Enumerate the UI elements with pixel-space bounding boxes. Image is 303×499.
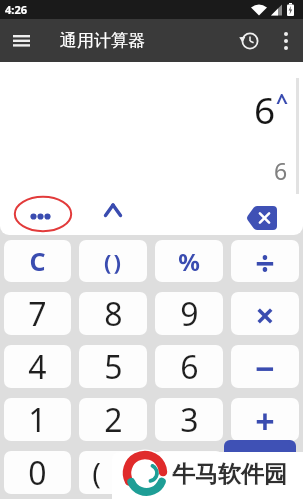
button[interactable]: 8 [79, 292, 147, 335]
staticText: − [255, 345, 275, 388]
button[interactable]: ( [79, 451, 147, 494]
staticText: 牛马软件园 [172, 460, 287, 489]
staticText: 6 [180, 345, 199, 388]
staticText: × [255, 292, 275, 335]
staticText: + [255, 398, 275, 441]
button[interactable]: . [155, 451, 223, 494]
staticText: ( [92, 453, 101, 492]
button[interactable]: + [231, 398, 299, 441]
staticText: 1 [28, 398, 47, 441]
button[interactable] [269, 19, 303, 62]
staticText: 通用计算器 [60, 30, 145, 51]
staticText: () [104, 246, 123, 276]
staticText: 7 [28, 292, 47, 335]
button[interactable] [95, 196, 131, 232]
staticText: 4:26 [5, 2, 27, 17]
staticText: . [185, 451, 194, 494]
button[interactable]: () [79, 240, 147, 282]
button[interactable]: 0 [4, 451, 71, 494]
staticText: 5 [104, 345, 123, 388]
button[interactable]: 4 [4, 345, 71, 388]
button[interactable]: 5 [79, 345, 147, 388]
staticText: 3 [180, 398, 199, 441]
button[interactable]: 3 [155, 398, 223, 441]
staticText: 0 [28, 451, 47, 494]
button[interactable]: 1 [4, 398, 71, 441]
button[interactable]: ÷ [231, 240, 299, 282]
staticText: 6 [254, 84, 276, 134]
button[interactable] [240, 200, 284, 234]
button[interactable]: 2 [79, 398, 147, 441]
staticText: 2 [104, 398, 123, 441]
button[interactable]: 6 [155, 345, 223, 388]
button[interactable] [229, 19, 269, 62]
button[interactable]: − [231, 345, 299, 388]
staticText: 8 [104, 292, 123, 335]
button[interactable]: × [231, 292, 299, 335]
staticText: 9 [180, 292, 199, 335]
staticText: 6 [274, 155, 288, 186]
button[interactable]: 7 [4, 292, 71, 335]
button[interactable] [14, 196, 72, 232]
button[interactable]: % [155, 240, 223, 282]
staticText: ^ [276, 87, 289, 116]
button[interactable]: 9 [155, 292, 223, 335]
button[interactable]: C [4, 240, 71, 282]
staticText: % [178, 245, 200, 278]
staticText: C [29, 244, 46, 278]
staticText: ÷ [255, 240, 275, 282]
staticText: 4 [28, 345, 47, 388]
button[interactable] [0, 19, 43, 62]
button[interactable] [224, 440, 296, 492]
